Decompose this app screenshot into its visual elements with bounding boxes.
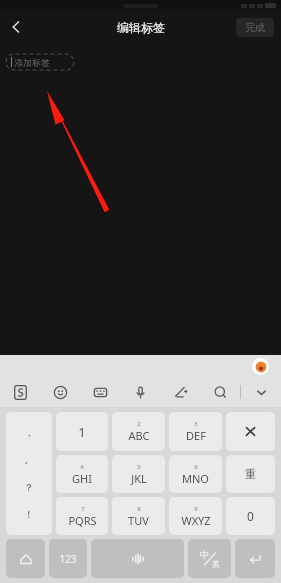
button[interactable]: 重 <box>226 455 275 493</box>
button[interactable]: Space <box>91 539 184 578</box>
staticText: TUV <box>128 513 149 528</box>
button[interactable]: ， <box>6 412 52 535</box>
button[interactable]: Sticker <box>252 358 269 375</box>
staticText: 中 <box>200 549 209 560</box>
staticText: GHI <box>72 471 92 486</box>
button[interactable]: Emoji <box>40 377 80 407</box>
staticText: ABC <box>128 428 150 443</box>
staticText: JKL <box>131 471 147 486</box>
staticText: 完成 <box>245 21 265 34</box>
button[interactable]: Voice input <box>120 377 160 407</box>
button[interactable]: 7 <box>56 497 108 535</box>
staticText: 添加标签 <box>14 57 50 68</box>
button[interactable]: 1 <box>56 412 108 451</box>
button[interactable]: 完成 <box>236 18 274 37</box>
staticText: 4 <box>80 463 84 471</box>
staticText: MNO <box>182 471 209 486</box>
staticText: 123 <box>59 552 77 566</box>
button[interactable]: 6 <box>169 455 222 493</box>
staticText: WXYZ <box>181 513 211 528</box>
button[interactable]: Back <box>0 11 32 43</box>
button[interactable]: Hide keyboard <box>241 377 281 407</box>
staticText: 3 <box>194 420 198 428</box>
button[interactable]: 123 <box>49 539 87 578</box>
staticText: ！ <box>24 508 34 521</box>
staticText: 重 <box>245 467 256 481</box>
staticText: 6 <box>194 463 198 471</box>
staticText: 。 <box>24 453 34 466</box>
staticText: 9 <box>194 505 198 513</box>
button[interactable]: Sogou <box>0 377 40 407</box>
button[interactable]: 0 <box>226 497 275 535</box>
button[interactable]: Home <box>6 539 45 578</box>
staticText: 0 <box>247 508 254 524</box>
staticText: ？ <box>24 481 34 494</box>
button[interactable]: 9 <box>169 497 222 535</box>
button[interactable]: 2 <box>112 412 165 451</box>
staticText: ， <box>24 426 34 439</box>
staticText: 编辑标签 <box>117 20 165 35</box>
button[interactable]: Search <box>200 377 240 407</box>
button[interactable]: Delete <box>226 412 275 451</box>
staticText: 5 <box>137 463 141 471</box>
button[interactable]: 5 <box>112 455 165 493</box>
staticText: 英 <box>212 559 220 569</box>
button[interactable]: Keyboard layout <box>80 377 120 407</box>
button[interactable]: 4 <box>56 455 108 493</box>
staticText: DEF <box>186 428 206 443</box>
staticText: 7 <box>81 505 85 513</box>
staticText: 1 <box>78 423 86 441</box>
button[interactable]: Handwriting <box>160 377 200 407</box>
staticText: 2 <box>137 420 141 428</box>
button[interactable]: Enter <box>235 539 275 578</box>
button[interactable]: Chinese English toggle <box>188 539 231 578</box>
button[interactable]: 8 <box>112 497 165 535</box>
button[interactable]: 3 <box>169 412 222 451</box>
staticText: 8 <box>137 505 141 513</box>
staticText: PQRS <box>68 513 97 528</box>
button[interactable]: 添加标签 <box>6 54 74 70</box>
